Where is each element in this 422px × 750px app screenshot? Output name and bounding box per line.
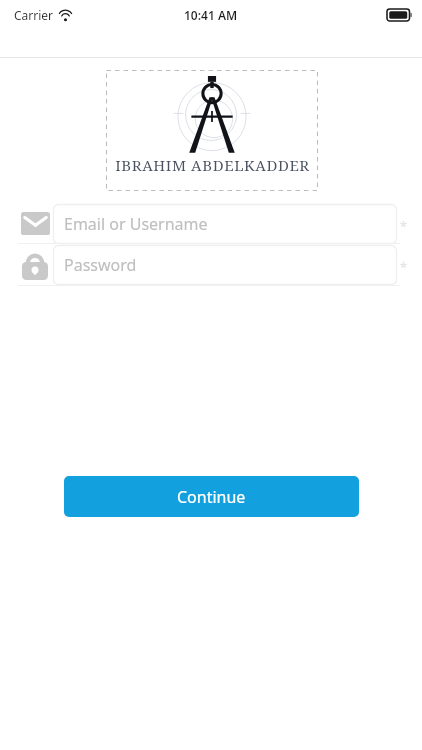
button[interactable]: Continue: [64, 476, 359, 517]
button[interactable]: Email: [0, 203, 422, 244]
staticText: Carrier: [14, 7, 54, 23]
staticText: 10:41 AM: [184, 7, 238, 23]
button[interactable]: Password: [0, 244, 422, 285]
staticText: *: [400, 217, 408, 235]
staticText: Email or Username: [64, 213, 208, 235]
staticText: *: [400, 258, 408, 276]
staticText: Continue: [177, 486, 246, 508]
other: Password: [22, 250, 48, 280]
staticText: Password: [64, 254, 137, 276]
other: Email: [21, 212, 50, 235]
staticText: IBRAHIM ABDELKADDER: [115, 155, 310, 175]
